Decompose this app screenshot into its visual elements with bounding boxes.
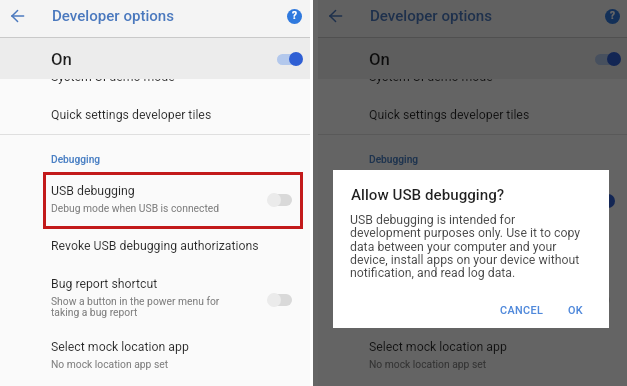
staticText: Bug report shortcut — [369, 277, 476, 291]
staticText: Revoke USB debugging authorizations — [369, 239, 577, 253]
staticText: System UI demo mode — [369, 70, 493, 84]
staticText: USB debugging is intended for — [350, 213, 516, 227]
button[interactable]: USB debugging toggle — [586, 190, 616, 212]
button[interactable]: Bug report shortcut toggle — [585, 289, 613, 311]
button[interactable]: OK — [563, 299, 589, 321]
button[interactable]: Back — [2, 2, 32, 34]
staticText: Select mock location app — [369, 340, 507, 354]
staticText: System UI demo mode — [51, 70, 175, 84]
staticText: Debugging — [51, 154, 101, 166]
button[interactable]: USB debugging toggle — [267, 189, 295, 211]
staticText: Developer options — [52, 7, 175, 25]
button[interactable]: Help — [596, 0, 627, 32]
staticText: Bug report shortcut — [51, 277, 158, 291]
staticText: notification, and read log data. — [350, 266, 516, 280]
button[interactable]: Bug report shortcut toggle — [267, 289, 295, 311]
staticText: data between your computer and your — [350, 240, 557, 254]
staticText: On — [369, 49, 390, 69]
staticText: Debug mode when USB is connected — [369, 202, 538, 214]
staticText: Debug mode when USB is connected — [51, 202, 220, 214]
staticText: Show a button in the power menu for — [369, 295, 538, 307]
staticText: device, install apps on your device with… — [350, 253, 580, 267]
staticText: Show a button in the power menu for — [51, 295, 220, 307]
staticText: No mock location app set — [369, 358, 487, 370]
staticText: ? — [610, 10, 615, 22]
staticText: Revoke USB debugging authorizations — [51, 239, 259, 253]
button[interactable]: Back — [320, 2, 350, 34]
staticText: Select mock location app — [51, 340, 189, 354]
button[interactable]: CANCEL — [495, 299, 548, 321]
staticText: On — [51, 49, 72, 69]
staticText: development purposes only. Use it to cop… — [350, 226, 581, 240]
staticText: USB debugging — [369, 184, 453, 198]
staticText: USB debugging — [51, 184, 135, 198]
staticText: No mock location app set — [51, 358, 169, 370]
staticText: Quick settings developer tiles — [369, 108, 530, 122]
staticText: OK — [568, 304, 584, 317]
button[interactable]: Developer options on — [274, 48, 304, 70]
button[interactable]: Help — [278, 0, 310, 32]
staticText: taking a bug report — [51, 306, 138, 318]
staticText: Quick settings developer tiles — [51, 108, 212, 122]
staticText: CANCEL — [500, 304, 544, 317]
staticText: Developer options — [370, 7, 493, 25]
staticText: Allow USB debugging? — [351, 186, 505, 204]
staticText: ? — [292, 10, 297, 22]
staticText: Debugging — [369, 154, 419, 166]
button[interactable]: Developer options on — [592, 48, 622, 70]
